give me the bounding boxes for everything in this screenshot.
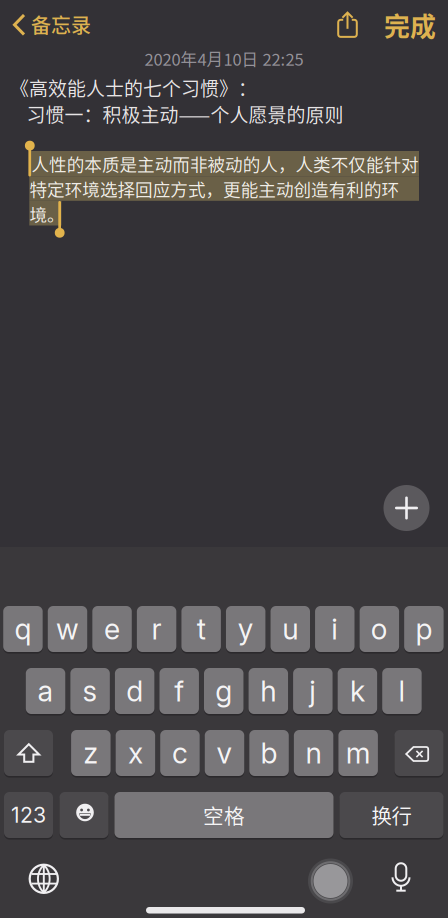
button[interactable]: e [92,606,132,654]
button[interactable]: c [160,730,200,778]
button[interactable]: a [26,668,65,716]
button[interactable]: u [270,606,310,654]
button[interactable]: x [116,730,155,778]
staticText: b [260,736,277,770]
staticText: j [309,674,316,708]
button[interactable]: m [338,730,378,778]
button[interactable] [381,855,421,899]
button[interactable]: t [181,606,221,654]
button[interactable]: 空格 [114,792,333,840]
staticText: 备忘录 [31,10,91,39]
staticText: c [172,736,188,770]
staticText: f [174,674,184,708]
staticText: q [14,612,31,646]
staticText: e [104,612,120,646]
staticText: 境。 [29,201,65,227]
button[interactable] [383,485,429,531]
staticText: 完成 [384,6,436,44]
button[interactable]: f [159,668,199,716]
button[interactable] [59,792,108,840]
staticText: y [238,612,254,646]
button[interactable]: p [404,606,444,654]
button[interactable]: g [204,668,243,716]
button[interactable]: r [137,606,176,654]
button[interactable]: y [226,606,265,654]
staticText: 人性的本质是主动而非被动的人，人类不仅能针对 [31,151,419,176]
button[interactable]: 完成 [375,2,445,48]
button[interactable]: k [338,668,377,716]
staticText: a [37,674,53,708]
staticText: 换行 [371,800,411,830]
staticText: 习惯一：积极主动——个人愿景的原则 [26,100,343,128]
staticText: 特定环境选择回应方式，更能主动创造有利的环 [29,176,399,201]
button[interactable]: j [293,668,333,716]
button[interactable] [308,858,353,903]
button[interactable]: o [360,606,399,654]
button[interactable] [4,730,53,778]
button[interactable]: i [315,606,354,654]
staticText: z [83,736,98,770]
button[interactable]: 备忘录 [0,0,95,48]
button[interactable]: q [3,606,43,654]
staticText: x [128,736,143,770]
button[interactable]: w [48,606,87,654]
button[interactable]: h [249,668,288,716]
staticText: u [282,612,298,646]
button[interactable]: z [71,730,111,778]
button[interactable]: l [382,668,422,716]
button[interactable]: 换行 [339,792,443,840]
staticText: v [216,736,232,770]
button[interactable] [394,730,443,778]
staticText: r [152,612,162,646]
staticText: l [398,674,405,708]
staticText: g [215,674,232,708]
button[interactable] [324,5,370,51]
staticText: m [346,736,371,770]
staticText: k [350,674,365,708]
staticText: p [415,612,432,646]
staticText: d [126,674,143,708]
staticText: t [197,612,206,646]
staticText: i [331,612,338,646]
button[interactable]: s [70,668,110,716]
button[interactable]: d [115,668,154,716]
button[interactable]: b [249,730,289,778]
button[interactable]: n [294,730,333,778]
staticText: 《高效能人士的七个习惯》： [10,74,257,101]
button[interactable]: 123 [4,792,53,840]
staticText: s [83,674,98,708]
staticText: 123 [11,802,46,828]
button[interactable] [22,857,66,901]
staticText: h [260,674,276,708]
staticText: n [306,736,322,770]
staticText: 2020年4月10日 22:25 [144,46,303,70]
button[interactable]: v [205,730,244,778]
staticText: o [371,612,388,646]
staticText: 空格 [203,800,245,830]
staticText: w [56,612,79,646]
